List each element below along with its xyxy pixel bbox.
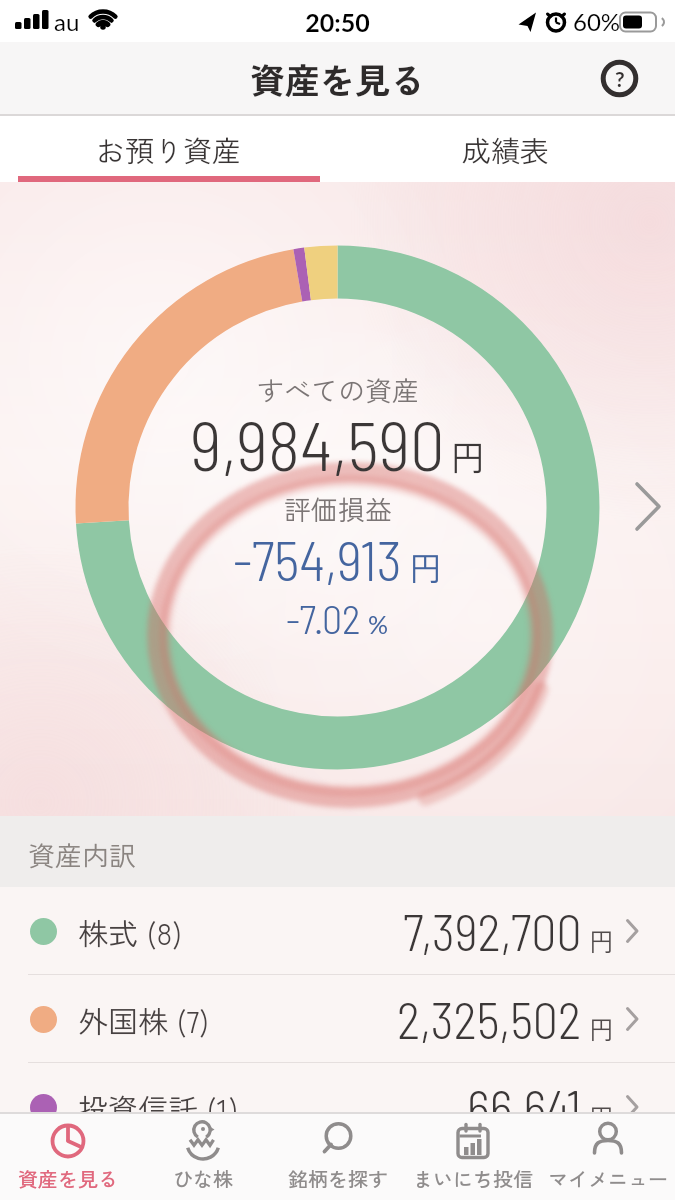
button[interactable]: すべての資産 <box>0 182 675 816</box>
staticText: % <box>368 609 389 639</box>
button[interactable]: マイメニュー <box>540 1114 675 1200</box>
staticText: 投資信託 (1) <box>78 1086 239 1129</box>
staticText: -7.02 <box>286 594 361 642</box>
staticText: 成績表 <box>462 128 550 170</box>
button[interactable]: ? <box>601 60 638 97</box>
staticText: ? <box>615 66 625 91</box>
staticText: 60% <box>573 7 621 36</box>
staticText: 資産を見る <box>250 53 426 104</box>
staticText: 円 <box>589 1098 615 1134</box>
button[interactable]: 外国株 (7) <box>0 975 675 1063</box>
staticText: 9,984,590 <box>190 402 445 485</box>
button[interactable]: ひな株 <box>135 1114 270 1200</box>
staticText: 円 <box>589 922 615 958</box>
button[interactable]: まいにち投信 <box>405 1114 540 1200</box>
button[interactable]: 資産を見る <box>0 1114 135 1200</box>
staticText: 評価損益 <box>284 489 392 528</box>
staticText: au <box>54 7 80 36</box>
staticText: 銘柄を探す <box>288 1164 388 1193</box>
button[interactable]: 成績表 <box>337 116 675 182</box>
staticText: 外国株 (7) <box>78 998 210 1041</box>
staticText: すべての資産 <box>257 370 419 409</box>
staticText: -754,913 <box>233 526 402 592</box>
staticText: 資産を見る <box>18 1164 118 1193</box>
staticText: マイメニュー <box>548 1164 668 1193</box>
staticText: 66,641 <box>467 1077 582 1137</box>
staticText: 株式 (8) <box>78 910 183 953</box>
staticText: 7,392,700 <box>403 901 582 961</box>
staticText: お預り資産 <box>96 128 242 170</box>
staticText: まいにち投信 <box>413 1164 533 1193</box>
staticText: 2,325,502 <box>397 989 582 1049</box>
staticText: ひな株 <box>173 1164 233 1193</box>
staticText: 円 <box>409 543 442 591</box>
button[interactable]: 投資信託 (1) <box>0 1063 675 1151</box>
staticText: 資産内訳 <box>28 835 136 874</box>
staticText: 円 <box>450 430 486 481</box>
button[interactable]: 銘柄を探す <box>270 1114 405 1200</box>
staticText: 円 <box>589 1010 615 1046</box>
button[interactable]: 株式 (8) <box>0 887 675 975</box>
staticText: 20:50 <box>0 7 675 37</box>
button[interactable]: お預り資産 <box>0 116 337 182</box>
